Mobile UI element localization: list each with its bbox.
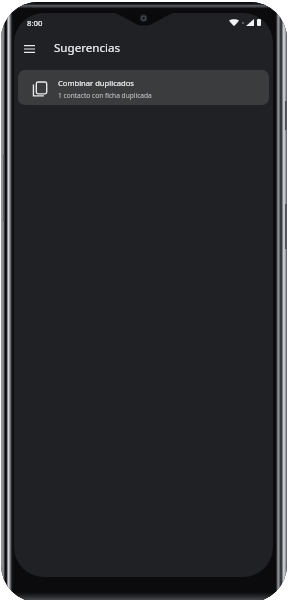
staticText: 1 contacto con ficha duplicada bbox=[58, 91, 152, 100]
staticText: Combinar duplicados bbox=[58, 78, 134, 88]
staticText: Sugerencias bbox=[54, 40, 121, 56]
button[interactable]: Abrir menú de navegación bbox=[16, 36, 42, 62]
button[interactable]: Combinar duplicados bbox=[18, 70, 269, 105]
staticText: 8:00 bbox=[27, 18, 43, 29]
